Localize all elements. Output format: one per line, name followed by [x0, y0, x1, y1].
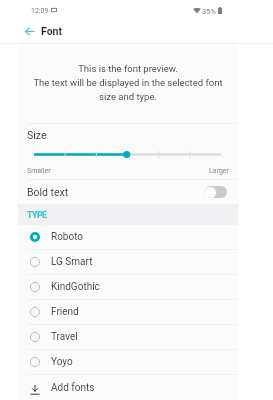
button[interactable]: Travel [27, 325, 238, 349]
staticText: TYPE [27, 210, 47, 220]
staticText: Add fonts [51, 382, 95, 394]
staticText: 12:09 [31, 7, 49, 15]
staticText: Bold text [27, 186, 69, 198]
staticText: Size [27, 129, 47, 141]
staticText: Travel [51, 331, 78, 343]
staticText: Larger [209, 167, 229, 175]
button[interactable]: Roboto [27, 225, 238, 249]
staticText: Friend [51, 306, 79, 318]
staticText: This is the font preview. The text will … [32, 63, 224, 102]
staticText: LG Smart [51, 256, 93, 268]
button[interactable]: Bold text [27, 180, 227, 204]
button[interactable]: Back [21, 23, 37, 39]
staticText: Smaller [27, 167, 51, 175]
staticText: 35% [202, 7, 216, 16]
button[interactable] [27, 150, 238, 162]
staticText: Yoyo [51, 356, 73, 368]
button[interactable]: Yoyo [27, 350, 238, 374]
button[interactable]: Add fonts [27, 375, 238, 400]
staticText: Roboto [51, 231, 84, 243]
button[interactable]: KindGothic [27, 275, 238, 299]
staticText: Font [41, 25, 63, 37]
staticText: KindGothic [51, 281, 100, 293]
button[interactable]: Friend [27, 300, 238, 324]
button[interactable]: LG Smart [27, 250, 238, 274]
